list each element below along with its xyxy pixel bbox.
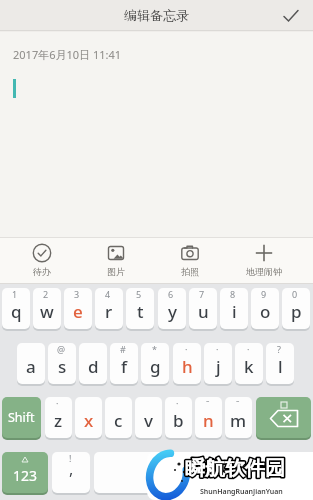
staticText: ˉ bbox=[236, 397, 240, 409]
staticText: g bbox=[150, 355, 161, 378]
button[interactable]: 待办 bbox=[10, 239, 74, 282]
staticText: 123 bbox=[13, 466, 38, 485]
staticText: 0 bbox=[292, 288, 298, 300]
button[interactable]: ? bbox=[266, 343, 294, 384]
button[interactable]: · bbox=[235, 343, 263, 384]
staticText: i bbox=[232, 300, 237, 323]
staticText: p bbox=[291, 300, 302, 323]
staticText: z bbox=[54, 409, 63, 432]
staticText: l bbox=[278, 355, 283, 378]
staticText: 7 bbox=[199, 288, 205, 300]
staticText: 2017年6月10日 11:41 bbox=[13, 47, 122, 62]
button[interactable]: c bbox=[105, 397, 132, 438]
staticText: x bbox=[84, 409, 94, 432]
button[interactable]: 3 bbox=[64, 288, 92, 329]
button[interactable]: @ bbox=[48, 343, 76, 384]
staticText: j bbox=[216, 355, 221, 378]
staticText: b bbox=[173, 409, 184, 432]
button[interactable]: 拍照 bbox=[158, 239, 222, 282]
button[interactable]: · bbox=[173, 343, 201, 384]
staticText: r bbox=[105, 300, 113, 323]
button[interactable]: 5 bbox=[126, 288, 154, 329]
staticText: Shift bbox=[8, 409, 35, 426]
button[interactable]: 123 bbox=[2, 452, 48, 493]
staticText: 待办 bbox=[33, 266, 51, 277]
staticText: k bbox=[244, 355, 254, 378]
staticText: 1 bbox=[12, 288, 18, 300]
staticText: · bbox=[176, 397, 179, 409]
staticText: ˉ bbox=[206, 397, 210, 409]
staticText: 3 bbox=[74, 288, 80, 300]
button[interactable]: ! bbox=[52, 452, 90, 493]
staticText: m bbox=[230, 409, 247, 432]
staticText: , bbox=[69, 458, 74, 480]
staticText: * bbox=[152, 343, 157, 355]
staticText: @ bbox=[57, 343, 66, 355]
staticText: f bbox=[121, 355, 128, 378]
staticText: · bbox=[247, 343, 250, 355]
staticText: · bbox=[216, 343, 219, 355]
staticText: 拍照 bbox=[181, 266, 199, 277]
staticText: d bbox=[88, 355, 99, 378]
staticText: n bbox=[203, 409, 214, 432]
button[interactable]: x bbox=[75, 397, 102, 438]
staticText: 编辑备忘录 bbox=[124, 7, 189, 23]
staticText: t bbox=[137, 300, 144, 323]
button[interactable]: Shift bbox=[2, 397, 41, 438]
staticText: ! bbox=[69, 452, 72, 464]
button[interactable]: 1 bbox=[2, 288, 30, 329]
button[interactable]: # bbox=[110, 343, 138, 384]
button[interactable]: 4 bbox=[95, 288, 123, 329]
staticText: 9 bbox=[261, 288, 267, 300]
button[interactable] bbox=[94, 452, 219, 493]
staticText: 8 bbox=[230, 288, 236, 300]
button[interactable] bbox=[262, 452, 311, 493]
staticText: w bbox=[40, 300, 54, 323]
button[interactable]: · bbox=[204, 343, 232, 384]
button[interactable]: · bbox=[165, 397, 192, 438]
staticText: y bbox=[168, 300, 177, 323]
staticText: e bbox=[73, 300, 83, 323]
staticText: ? bbox=[277, 343, 281, 355]
staticText: · bbox=[56, 397, 59, 409]
button[interactable] bbox=[223, 452, 258, 493]
button[interactable]: 6 bbox=[158, 288, 186, 329]
staticText: h bbox=[182, 355, 193, 378]
staticText: 6 bbox=[168, 288, 174, 300]
staticText: u bbox=[198, 300, 209, 323]
button[interactable]: d bbox=[79, 343, 107, 384]
staticText: 图片 bbox=[107, 266, 125, 277]
staticText: 2 bbox=[43, 288, 49, 300]
button[interactable]: 图片 bbox=[84, 239, 148, 282]
button[interactable]: ˉ bbox=[195, 397, 222, 438]
staticText: c bbox=[114, 409, 123, 432]
staticText: 5 bbox=[136, 288, 142, 300]
staticText: o bbox=[260, 300, 271, 323]
staticText: # bbox=[120, 343, 126, 355]
button[interactable]: 2 bbox=[33, 288, 61, 329]
staticText: · bbox=[185, 343, 188, 355]
button[interactable]: a bbox=[17, 343, 45, 384]
staticText: s bbox=[58, 355, 67, 378]
staticText: 4 bbox=[105, 288, 111, 300]
button[interactable]: * bbox=[141, 343, 169, 384]
staticText: 地理闹钟 bbox=[246, 266, 282, 277]
button[interactable] bbox=[281, 5, 301, 25]
button[interactable]: ˉ bbox=[225, 397, 252, 438]
button[interactable]: · bbox=[45, 397, 72, 438]
staticText: v bbox=[144, 409, 153, 432]
staticText: 瞬航软件园 bbox=[185, 456, 285, 481]
button[interactable]: 9 bbox=[251, 288, 279, 329]
staticText: a bbox=[26, 355, 36, 378]
button[interactable]: 0 bbox=[282, 288, 310, 329]
staticText: 瞬航软件园 bbox=[185, 456, 285, 481]
button[interactable]: 7 bbox=[189, 288, 217, 329]
staticText: q bbox=[11, 300, 22, 323]
button[interactable]: 8 bbox=[220, 288, 248, 329]
staticText: ShunHangRuanJianYuan bbox=[200, 487, 283, 497]
button[interactable] bbox=[256, 397, 311, 438]
button[interactable]: 地理闹钟 bbox=[232, 239, 296, 282]
button[interactable]: v bbox=[135, 397, 162, 438]
